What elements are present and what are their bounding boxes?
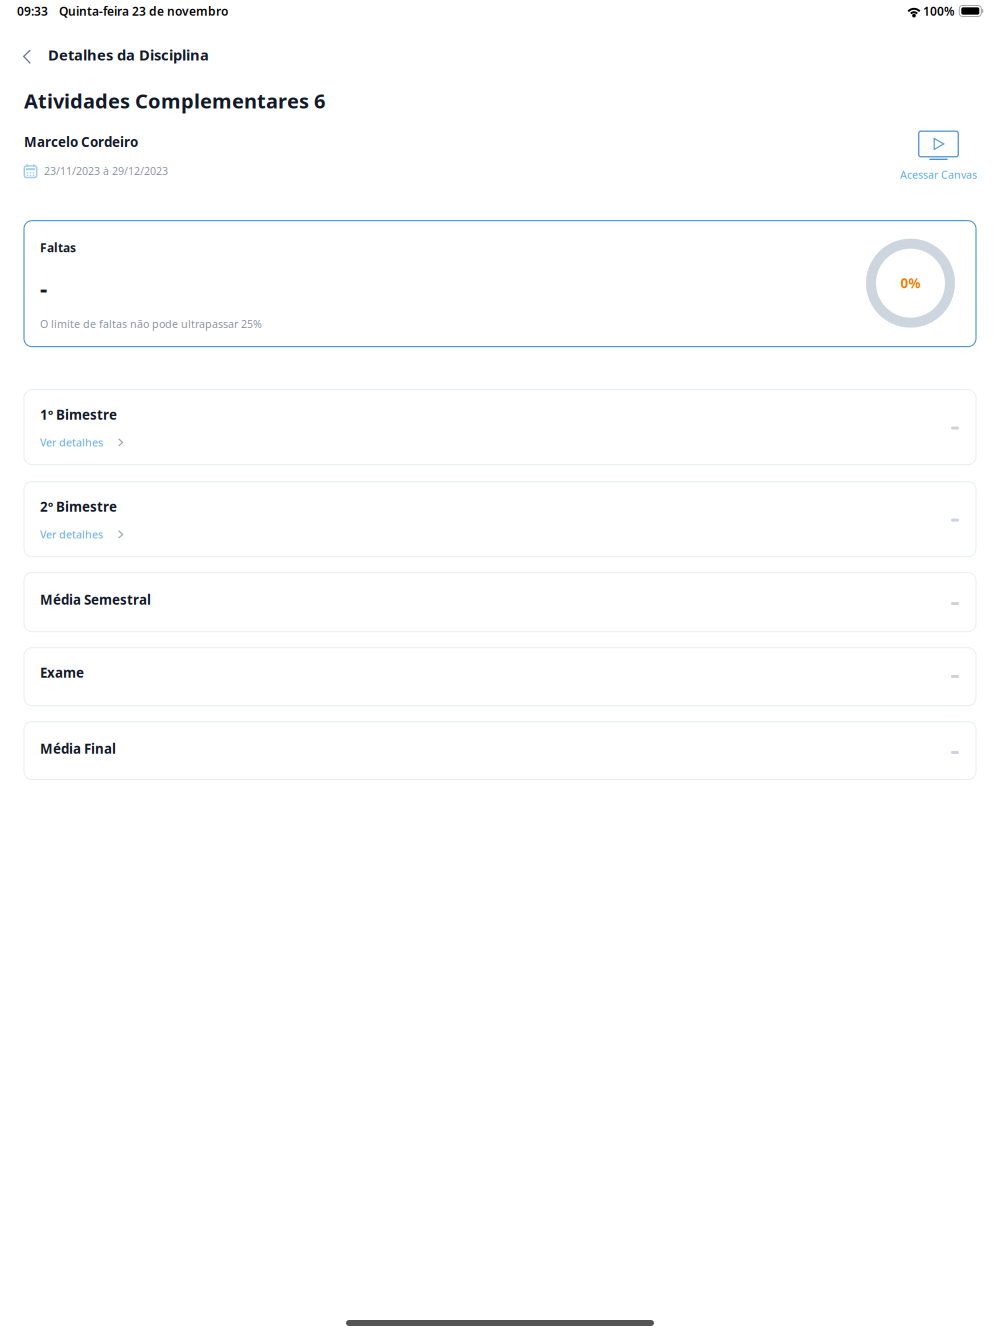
staticText: Detalhes da Disciplina (48, 45, 209, 64)
staticText: Média Final (40, 740, 116, 757)
staticText: 1º Bimestre (40, 406, 117, 423)
button[interactable]: Voltar — Detalhes da Disciplina (0, 39, 223, 70)
staticText: Exame (40, 664, 84, 681)
staticText: Marcelo Cordeiro (24, 133, 138, 151)
staticText: Ver detalhes (40, 527, 103, 541)
staticText: Atividades Complementares 6 (24, 87, 325, 114)
staticText: 0% (900, 274, 920, 292)
staticText: 09:33 (17, 3, 48, 19)
button[interactable]: 2º Bimestre (24, 482, 976, 557)
button[interactable]: Acessar Canvas (900, 87, 977, 182)
staticText: Acessar Canvas (900, 167, 977, 182)
staticText: Faltas (40, 240, 76, 255)
staticText: 23/11/2023 à 29/12/2023 (44, 164, 168, 178)
staticText: Média Semestral (40, 591, 151, 608)
staticText: O limite de faltas não pode ultrapassar … (40, 317, 262, 331)
staticText: Ver detalhes (40, 435, 103, 449)
staticText: Quinta-feira 23 de novembro (59, 3, 228, 19)
staticText: 2º Bimestre (40, 498, 117, 515)
button[interactable]: 1º Bimestre (24, 390, 976, 465)
staticText: 100% (923, 3, 955, 19)
staticText: - (40, 274, 47, 304)
